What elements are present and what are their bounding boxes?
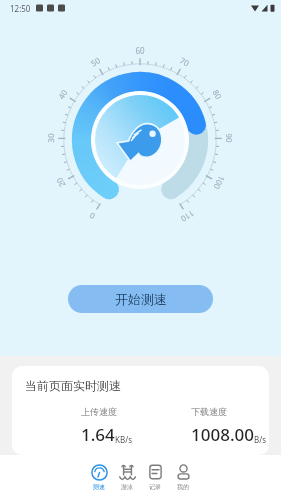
staticText: 100 [211,174,228,191]
button[interactable]: 我的 [169,464,197,491]
staticText: KB/s [115,434,132,445]
staticText: 12:50 [10,3,31,14]
staticText: 测速 [93,483,105,491]
staticText: 90 [224,133,235,143]
staticText: 1.64 [81,423,115,446]
button[interactable]: 开始测速 [68,285,213,313]
button[interactable]: 记录 [141,464,169,491]
staticText: 0 [87,210,97,222]
staticText: 70 [178,54,192,69]
staticText: 上传速度 [81,406,117,417]
staticText: 1008.00 [191,423,254,446]
staticText: 30 [45,133,56,143]
staticText: 游泳 [121,483,133,491]
staticText: 20 [53,176,68,190]
staticText: 当前页面实时测速 [25,378,121,393]
staticText: 开始测速 [115,291,167,307]
staticText: 我的 [177,483,189,491]
staticText: 50 [88,54,102,69]
button[interactable]: 游泳 [113,464,141,491]
staticText: B/s [254,434,267,445]
staticText: 下载速度 [191,406,227,417]
staticText: 记录 [149,483,161,491]
staticText: 80 [210,87,225,101]
staticText: 40 [55,87,70,101]
staticText: 110 [179,208,197,225]
button[interactable]: 测速 [85,464,113,491]
staticText: 60 [135,45,145,56]
